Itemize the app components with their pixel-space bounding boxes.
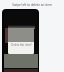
- staticText: Swipe left to delete an item: [12, 3, 52, 7]
- staticText: Delete this item?: [11, 43, 32, 47]
- button[interactable]: Delete this item?: [8, 28, 34, 54]
- button[interactable]: Swipe left to delete an item: [0, 0, 64, 9]
